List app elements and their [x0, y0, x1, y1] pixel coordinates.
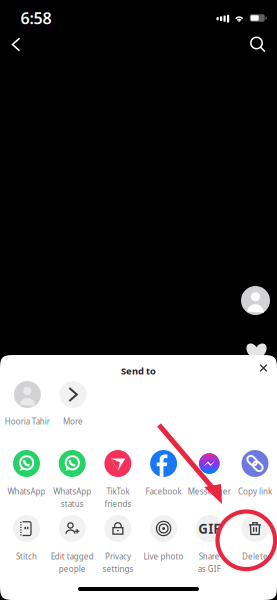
staticText: status: [61, 499, 84, 509]
button[interactable]: TikTok: [95, 450, 141, 508]
staticText: Send to: [121, 365, 156, 377]
staticText: Hooria Tahir: [5, 416, 50, 427]
staticText: Live photo: [144, 551, 184, 562]
button[interactable]: Search: [246, 32, 270, 56]
staticText: people: [59, 564, 86, 574]
staticText: Copy link: [238, 486, 272, 497]
staticText: settings: [102, 564, 133, 574]
button[interactable]: Hooria Tahir: [4, 381, 50, 427]
staticText: GIF: [198, 520, 220, 537]
button[interactable]: Close: [255, 363, 271, 379]
button[interactable]: Live photo: [141, 515, 186, 573]
staticText: as GIF: [198, 564, 221, 574]
button[interactable]: GIF: [186, 515, 232, 573]
button[interactable]: Delete: [232, 515, 277, 573]
staticText: WhatsApp: [53, 486, 91, 497]
staticText: WhatsApp: [7, 486, 45, 497]
staticText: Share: [199, 551, 220, 562]
button[interactable]: Stitch: [4, 515, 49, 573]
button[interactable]: WhatsApp: [4, 450, 49, 508]
button[interactable]: Privacy: [95, 515, 141, 573]
staticText: Privacy: [105, 551, 131, 562]
button[interactable]: WhatsApp: [49, 450, 95, 508]
staticText: Messenger: [188, 486, 231, 497]
staticText: 6:58: [20, 7, 51, 29]
staticText: TikTok: [106, 486, 129, 497]
staticText: More: [63, 416, 83, 427]
button[interactable]: Edit tagged: [49, 515, 95, 573]
button[interactable]: More: [50, 381, 96, 427]
staticText: friends: [104, 499, 131, 509]
staticText: Facebook: [146, 486, 182, 497]
staticText: Edit tagged: [51, 551, 94, 562]
button[interactable]: Facebook: [141, 450, 186, 508]
button[interactable]: Messenger: [186, 450, 232, 508]
button[interactable]: Back: [4, 32, 28, 56]
staticText: Stitch: [16, 551, 37, 562]
button[interactable]: Copy link: [232, 450, 277, 508]
staticText: Delete: [242, 551, 268, 562]
